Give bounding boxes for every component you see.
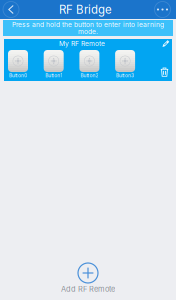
staticText: My RF Remote — [59, 39, 105, 48]
button[interactable]: Button3 — [115, 50, 135, 79]
staticText: RF Bridge — [59, 3, 112, 16]
button[interactable]: Button1 — [44, 50, 64, 79]
staticText: Button3 — [116, 73, 134, 78]
button[interactable]: Add RF Remote — [61, 263, 115, 293]
staticText: Button2 — [80, 73, 98, 78]
staticText: Button0 — [9, 73, 27, 78]
staticText: mode. — [78, 27, 98, 36]
button[interactable]: More — [149, 0, 176, 19]
staticText: Add RF Remote — [61, 284, 115, 293]
staticText: Button1 — [45, 73, 62, 78]
button[interactable]: Button2 — [79, 50, 99, 79]
staticText: Press and hold the button to enter into … — [12, 20, 164, 29]
button[interactable]: Delete remote — [158, 50, 170, 79]
button[interactable]: Edit — [160, 39, 172, 47]
button[interactable]: Back — [0, 0, 22, 19]
button[interactable]: Button0 — [8, 50, 28, 79]
